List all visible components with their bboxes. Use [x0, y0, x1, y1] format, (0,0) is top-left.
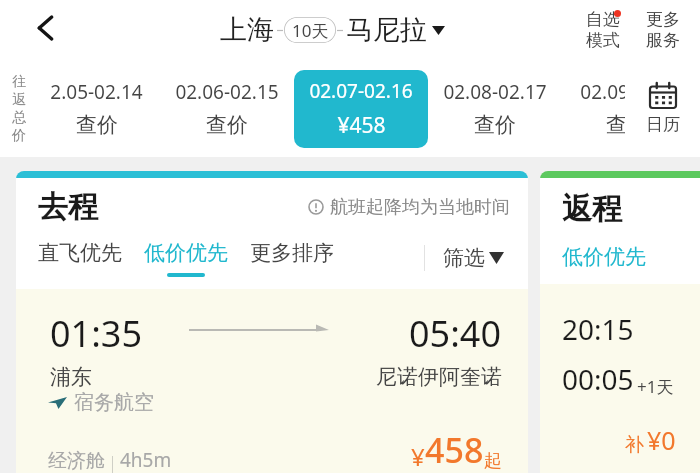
button[interactable]: 低价优先 [562, 244, 646, 270]
staticText: 查价 [606, 112, 648, 138]
button[interactable]: 02.06-02.15 [160, 60, 294, 157]
staticText: 4h5m [120, 447, 172, 473]
staticText: 更多 [646, 9, 680, 30]
button[interactable]: 2.05-02.14 [32, 60, 160, 157]
button[interactable]: 02.08-02.17 [428, 60, 562, 157]
button[interactable]: 自选 [578, 9, 628, 51]
staticText: 宿务航空 [74, 390, 154, 415]
staticText: 02.08-02.17 [443, 79, 547, 105]
staticText: 查价 [206, 112, 248, 138]
staticText: 服务 [646, 30, 680, 51]
staticText: 直飞优先 [38, 240, 122, 266]
button[interactable]: 低价优先 [144, 238, 228, 277]
staticText: 总 [12, 109, 26, 127]
button[interactable]: 筛选 [443, 239, 504, 277]
staticText: 上海 [220, 13, 274, 47]
button[interactable]: Back [18, 0, 74, 56]
button[interactable]: 直飞优先 [38, 238, 122, 277]
button[interactable]: 更多排序 [250, 238, 334, 277]
staticText: ¥ [411, 440, 425, 473]
staticText: 筛选 [443, 245, 485, 271]
staticText: 尼诺伊阿奎诺 [376, 364, 502, 390]
staticText: 去程 [38, 188, 98, 226]
staticText: 价 [12, 127, 26, 145]
staticText: 低价优先 [144, 240, 228, 266]
staticText: 自选 [586, 9, 620, 30]
button[interactable]: 02.07-02.16 [294, 70, 428, 148]
staticText: 02.06-02.15 [175, 79, 279, 105]
staticText: 低价优先 [562, 244, 646, 270]
staticText: 02.07-02.16 [309, 78, 413, 104]
staticText: 模式 [586, 30, 620, 51]
staticText: 浦东 [50, 364, 92, 390]
staticText: 05:40 [409, 309, 502, 358]
staticText: 10天 [292, 19, 329, 42]
staticText: ¥0 [647, 423, 676, 457]
staticText: 查价 [474, 112, 516, 138]
button[interactable]: 日历 [625, 60, 700, 157]
staticText: 航班起降均为当地时间 [330, 196, 510, 219]
staticText: 458 [425, 427, 484, 473]
staticText: 20:15 [562, 310, 634, 348]
staticText: 日历 [646, 114, 680, 135]
staticText: 马尼拉 [346, 13, 427, 47]
staticText: 查价 [76, 112, 118, 138]
staticText: 2.05-02.14 [50, 79, 143, 105]
staticText: 起 [484, 450, 502, 473]
staticText: 返 [12, 91, 26, 109]
staticText: 经济舱 [48, 449, 105, 473]
staticText: 补 [625, 433, 644, 457]
staticText: 返程 [562, 190, 622, 228]
button[interactable]: 上海 [220, 13, 445, 47]
staticText: 02.09-02.1 [580, 79, 673, 105]
staticText: 往 [12, 73, 26, 91]
staticText: 01:35 [50, 309, 143, 358]
button[interactable]: 更多 [640, 9, 686, 51]
staticText: 00:05 [562, 360, 634, 398]
staticText: +1天 [637, 375, 674, 398]
staticText: ¥458 [337, 111, 386, 140]
staticText: 更多排序 [250, 240, 334, 266]
button[interactable]: 02.09-02.1 [562, 60, 690, 157]
